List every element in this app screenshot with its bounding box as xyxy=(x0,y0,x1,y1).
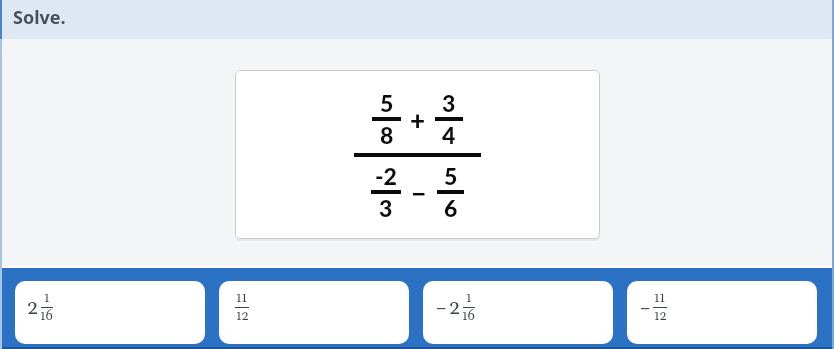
staticText: 6 xyxy=(444,194,458,222)
staticText: 12 xyxy=(654,308,667,325)
staticText: 5 xyxy=(380,89,394,117)
staticText: -2 xyxy=(375,162,397,190)
staticText: 4 xyxy=(442,121,456,149)
staticText: 3 xyxy=(442,89,456,117)
staticText: 3 xyxy=(379,194,393,222)
button[interactable]: − xyxy=(423,281,613,344)
staticText: 16 xyxy=(40,308,53,325)
staticText: 16 xyxy=(462,308,475,325)
button[interactable]: 5 xyxy=(235,70,600,239)
staticText: 8 xyxy=(380,121,394,149)
staticText: 2 xyxy=(27,295,39,320)
button[interactable]: 2 xyxy=(15,281,205,344)
staticText: 1 xyxy=(466,290,472,307)
staticText: 2 xyxy=(449,295,461,320)
staticText: − xyxy=(411,177,427,208)
staticText: − xyxy=(435,296,448,320)
staticText: 11 xyxy=(654,290,666,307)
button[interactable]: − xyxy=(627,281,817,344)
staticText: 5 xyxy=(444,162,458,190)
staticText: Solve. xyxy=(13,5,66,30)
staticText: 11 xyxy=(236,290,248,307)
staticText: 1 xyxy=(44,290,50,307)
staticText: 12 xyxy=(236,308,249,325)
staticText: + xyxy=(410,104,426,135)
button[interactable]: 11 xyxy=(219,281,409,344)
staticText: − xyxy=(639,296,652,320)
